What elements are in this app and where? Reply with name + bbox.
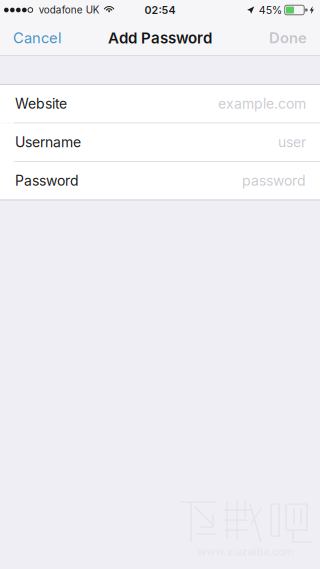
staticText: Username (15, 134, 81, 151)
staticText: vodafone UK (39, 4, 100, 16)
staticText: 45% (259, 3, 282, 16)
staticText: user (278, 134, 306, 151)
button[interactable]: Website (0, 85, 320, 122)
button[interactable]: Username (0, 123, 320, 161)
staticText: password (242, 172, 306, 189)
staticText: Website (15, 95, 67, 112)
staticText: Add Password (108, 29, 212, 47)
button[interactable]: Cancel (0, 20, 73, 56)
staticText: Done (269, 29, 307, 47)
staticText: Cancel (13, 29, 62, 47)
staticText: example.com (218, 95, 306, 112)
button[interactable]: Done (258, 20, 320, 56)
staticText: 02:54 (144, 3, 175, 16)
button[interactable]: Password (0, 162, 320, 199)
staticText: Password (15, 172, 79, 189)
